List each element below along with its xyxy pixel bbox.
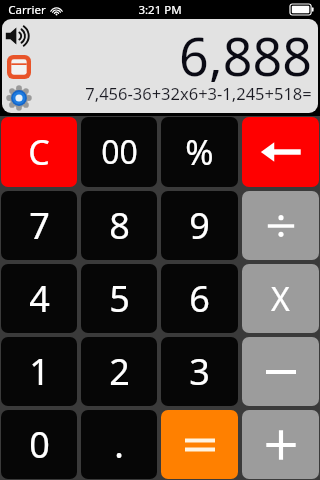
staticText: 5 [109,274,130,323]
staticText: 7,456-36+32x6+3-1,245+518= [85,82,312,104]
button[interactable]: Backspace [242,117,319,187]
button[interactable]: 3 [161,337,238,406]
button[interactable]: 7 [1,191,77,260]
button[interactable]: Divide [242,191,319,260]
button[interactable]: 8 [81,191,157,260]
staticText: 6,888 [179,20,312,82]
staticText: 7 [29,201,50,250]
staticText: 2 [109,347,130,396]
button[interactable]: 0 [1,410,77,479]
button[interactable]: 6 [161,264,238,333]
staticText: 8 [109,201,130,250]
button[interactable]: C [1,117,77,187]
button[interactable]: 5 [81,264,157,333]
button[interactable]: % [161,117,238,187]
button[interactable]: 4 [1,264,77,333]
staticText: % [185,129,214,175]
staticText: X [271,277,290,321]
button[interactable]: Equals [161,410,238,479]
staticText: 1 [29,347,50,396]
staticText: . [114,420,124,469]
button[interactable]: Settings [3,82,34,113]
staticText: C [28,129,50,175]
button[interactable]: 9 [161,191,238,260]
button[interactable]: 2 [81,337,157,406]
staticText: 3:21 PM [138,2,182,18]
staticText: 00 [101,130,138,174]
staticText: Carrier [8,2,46,18]
button[interactable]: 1 [1,337,77,406]
button[interactable]: Plus [242,410,319,479]
button[interactable]: X [242,264,319,333]
button[interactable]: Minus [242,337,319,406]
staticText: 3 [189,347,210,396]
button[interactable]: 00 [81,117,157,187]
staticText: 9 [189,201,210,250]
button[interactable]: . [81,410,157,479]
button[interactable]: Tape [3,51,34,82]
button[interactable]: Sound [3,20,34,51]
staticText: 0 [29,420,50,469]
staticText: 4 [29,274,50,323]
staticText: 6 [189,274,210,323]
